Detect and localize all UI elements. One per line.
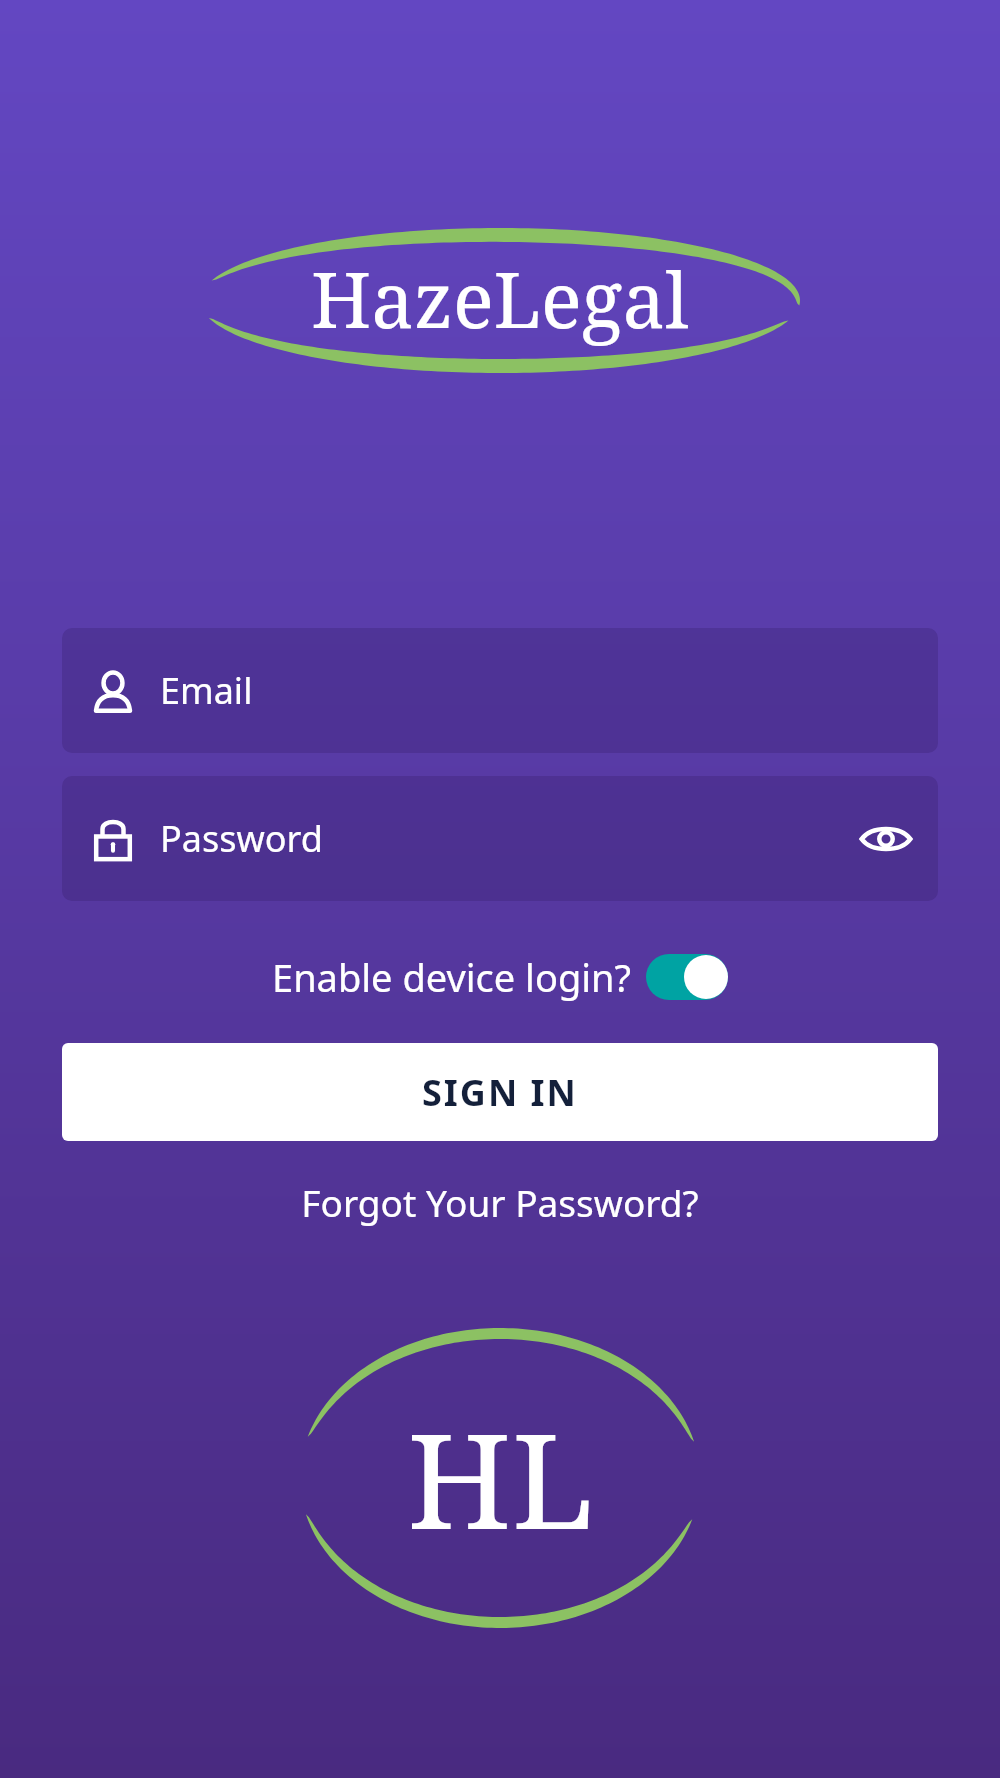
staticText: Enable device login?	[272, 951, 632, 1003]
other: Password	[92, 818, 134, 860]
button[interactable]: Forgot Your Password?	[281, 1167, 719, 1237]
staticText: SIGN IN	[422, 1068, 578, 1117]
other: Email	[92, 670, 134, 712]
button[interactable]: Show password	[860, 823, 912, 855]
button[interactable]: Password	[62, 776, 938, 901]
staticText: Email	[160, 666, 253, 715]
staticText: HazeLegal	[311, 247, 689, 351]
button[interactable]: Email	[62, 628, 938, 753]
staticText: Password	[160, 814, 323, 863]
button[interactable]: SIGN IN	[62, 1043, 938, 1141]
staticText: Forgot Your Password?	[301, 1177, 699, 1227]
staticText: HL	[407, 1388, 594, 1568]
button[interactable]: Enable device login?	[260, 943, 740, 1011]
